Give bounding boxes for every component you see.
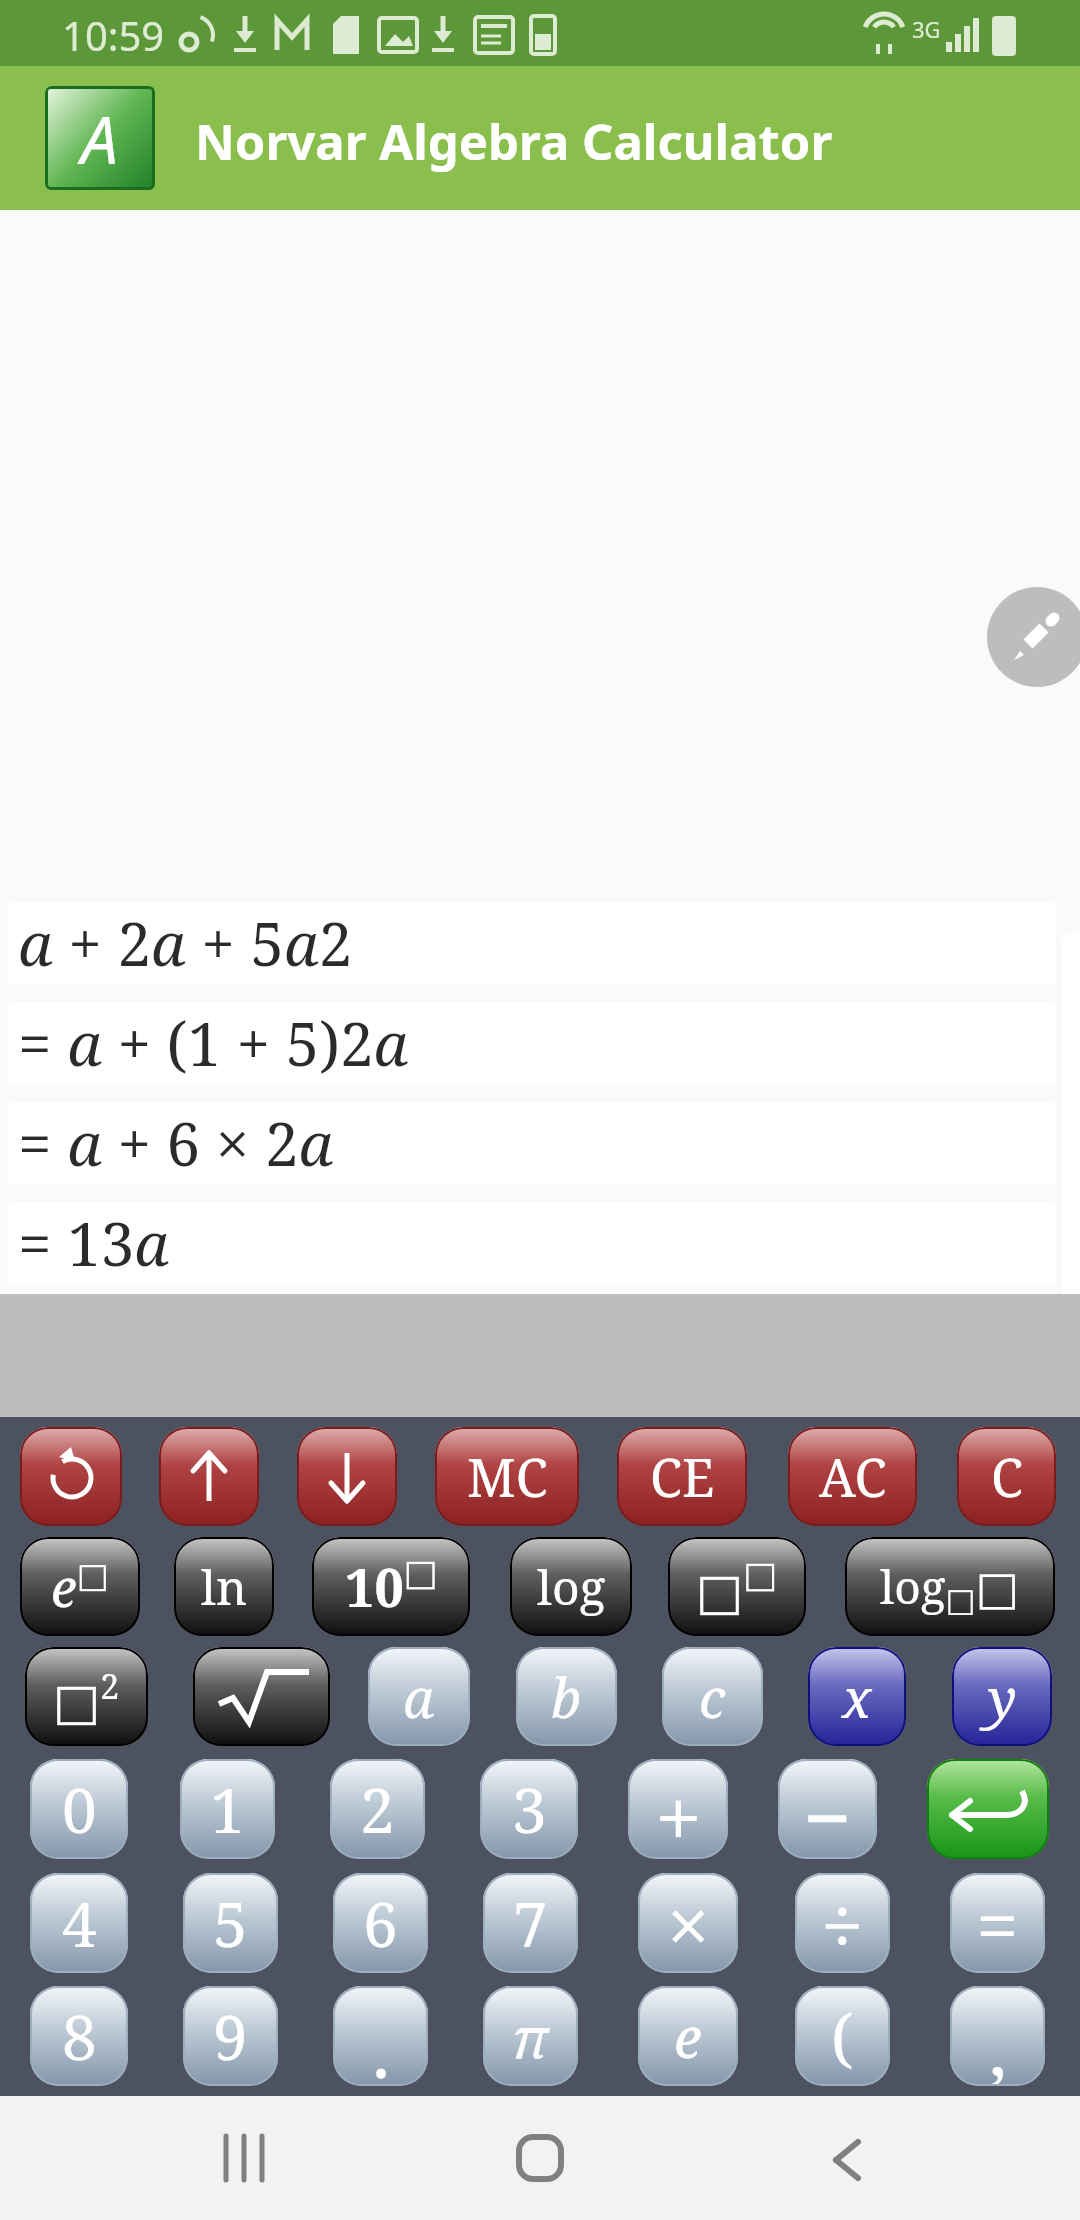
button[interactable]: [788, 2096, 908, 2220]
staticText: (: [831, 1993, 854, 2080]
button[interactable]: +: [628, 1759, 728, 1859]
staticText: .: [372, 2001, 390, 2086]
staticText: MC: [467, 1441, 548, 1512]
staticText: 2: [360, 1767, 395, 1851]
button[interactable]: 7: [483, 1873, 578, 1973]
button[interactable]: [193, 1647, 330, 1746]
staticText: log: [537, 1554, 606, 1619]
button[interactable]: C: [957, 1427, 1056, 1526]
staticText: 6: [363, 1881, 398, 1965]
button[interactable]: y: [952, 1647, 1052, 1746]
staticText: +: [655, 1759, 702, 1859]
staticText: e□: [51, 1551, 109, 1622]
button[interactable]: = 13a: [8, 1202, 1056, 1284]
staticText: 8: [62, 1994, 97, 2078]
button[interactable]: = a + 6 × 2a: [8, 1102, 1056, 1184]
button[interactable]: (: [795, 1986, 890, 2086]
button[interactable]: a: [368, 1647, 470, 1746]
button[interactable]: ×: [638, 1873, 738, 1973]
button[interactable]: 2: [330, 1759, 425, 1859]
button[interactable]: 9: [183, 1986, 278, 2086]
button[interactable]: [987, 587, 1080, 687]
staticText: ÷: [821, 1873, 864, 1973]
staticText: □□: [696, 1554, 778, 1620]
staticText: A: [81, 93, 119, 183]
button[interactable]: x: [808, 1647, 906, 1746]
button[interactable]: CE: [617, 1427, 747, 1526]
staticText: b: [551, 1660, 582, 1734]
staticText: ×: [667, 1873, 710, 1973]
button[interactable]: e: [638, 1986, 738, 2086]
button[interactable]: π: [483, 1986, 578, 2086]
staticText: 0: [62, 1767, 97, 1851]
button[interactable]: ln: [174, 1537, 274, 1636]
button[interactable]: 4: [30, 1873, 128, 1973]
button[interactable]: b: [516, 1647, 617, 1746]
button[interactable]: ,: [950, 1986, 1045, 2086]
staticText: 9: [213, 1994, 248, 2078]
button[interactable]: [480, 2096, 600, 2220]
staticText: y: [988, 1660, 1017, 1734]
button[interactable]: 3: [480, 1759, 578, 1859]
staticText: log□□: [880, 1555, 1020, 1619]
staticText: □2: [53, 1663, 120, 1731]
staticText: π: [512, 1998, 549, 2074]
staticText: C: [991, 1441, 1023, 1512]
button[interactable]: 5: [183, 1873, 278, 1973]
button[interactable]: A: [45, 86, 155, 190]
staticText: −: [803, 1759, 852, 1859]
staticText: AC: [819, 1441, 887, 1512]
button[interactable]: =: [950, 1873, 1045, 1973]
staticText: = 13a: [18, 1202, 169, 1284]
button[interactable]: [20, 1427, 122, 1526]
button[interactable]: 0: [30, 1759, 128, 1859]
button[interactable]: □2: [25, 1647, 148, 1746]
button[interactable]: a + 2a + 5a2: [8, 902, 1056, 984]
button[interactable]: [927, 1759, 1049, 1859]
button[interactable]: 10□: [312, 1537, 470, 1636]
button[interactable]: [186, 2096, 306, 2220]
staticText: CE: [650, 1441, 715, 1512]
staticText: 5: [213, 1881, 248, 1965]
staticText: x: [842, 1660, 872, 1734]
button[interactable]: ÷: [795, 1873, 890, 1973]
button[interactable]: = a + (1 + 5)2a: [8, 1002, 1056, 1084]
staticText: 7: [513, 1881, 548, 1965]
staticText: =: [976, 1873, 1019, 1973]
staticText: 10:59: [62, 8, 165, 62]
button[interactable]: −: [778, 1759, 877, 1859]
staticText: a + 2a + 5a2: [18, 902, 353, 984]
button[interactable]: 1: [180, 1759, 275, 1859]
staticText: e: [674, 1998, 702, 2074]
button[interactable]: log: [510, 1537, 632, 1636]
staticText: 10□: [345, 1551, 438, 1622]
button[interactable]: □□: [668, 1537, 806, 1636]
button[interactable]: 6: [333, 1873, 428, 1973]
button[interactable]: log□□: [845, 1537, 1055, 1636]
button[interactable]: e□: [20, 1537, 140, 1636]
staticText: ,: [989, 1999, 1007, 2086]
staticText: 3G: [912, 14, 941, 44]
button[interactable]: c: [662, 1647, 763, 1746]
staticText: 1: [210, 1767, 245, 1851]
staticText: a: [403, 1660, 435, 1734]
button[interactable]: .: [333, 1986, 428, 2086]
button[interactable]: [297, 1427, 397, 1526]
staticText: Norvar Algebra Calculator: [195, 108, 833, 175]
staticText: 4: [62, 1881, 97, 1965]
staticText: = a + 6 × 2a: [18, 1102, 334, 1184]
staticText: c: [699, 1660, 726, 1734]
staticText: = a + (1 + 5)2a: [18, 1002, 409, 1084]
staticText: 3: [512, 1767, 547, 1851]
button[interactable]: [159, 1427, 259, 1526]
button[interactable]: AC: [788, 1427, 917, 1526]
staticText: ln: [201, 1554, 247, 1619]
button[interactable]: 8: [30, 1986, 128, 2086]
button[interactable]: MC: [435, 1427, 579, 1526]
